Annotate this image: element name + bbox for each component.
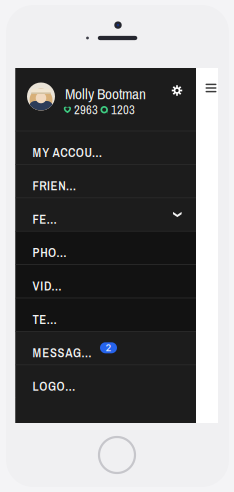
staticText: 2 (105, 342, 111, 353)
staticText: FRIENDS (32, 177, 81, 194)
button[interactable]: TEXT (15, 298, 196, 331)
staticText: VIDEO (32, 277, 67, 294)
staticText: Molly Bootman (65, 83, 146, 104)
staticText: TEXT (32, 311, 61, 328)
button[interactable]: Menu (201, 78, 220, 97)
staticText: FEED (32, 211, 62, 228)
button[interactable]: PHOTO (15, 231, 196, 264)
staticText: 2963 (74, 101, 98, 118)
button[interactable]: FRIENDS (15, 164, 196, 197)
button[interactable]: FEED (15, 197, 196, 231)
staticText: PHOTO (32, 244, 71, 261)
button[interactable]: LOGOUT (15, 364, 196, 398)
staticText: MY ACCOUNT (32, 144, 106, 161)
button[interactable]: MY ACCOUNT (15, 131, 196, 164)
button[interactable]: Settings (166, 79, 188, 101)
button[interactable]: VIDEO (15, 264, 196, 298)
staticText: 1203 (111, 101, 135, 118)
staticText: LOGOUT (32, 378, 79, 395)
staticText: MESSAGES (32, 344, 96, 361)
button[interactable]: MESSAGES (15, 331, 196, 364)
